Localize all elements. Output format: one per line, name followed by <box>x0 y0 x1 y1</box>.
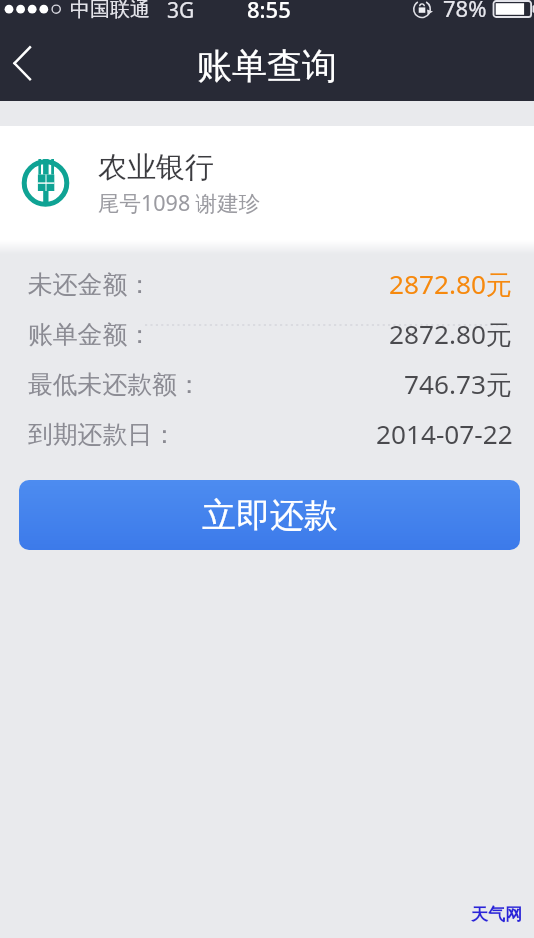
staticText: 未还金额： <box>28 269 152 300</box>
staticText: 到期还款日： <box>28 419 177 450</box>
staticText: 尾号1098 谢建珍 <box>98 188 261 217</box>
staticText: 立即还款 <box>202 494 338 537</box>
button[interactable]: 立即还款 <box>19 480 520 550</box>
staticText: 78% <box>443 0 487 23</box>
staticText: 最低未还款额： <box>28 369 202 400</box>
staticText: 2872.80元 <box>389 266 513 302</box>
staticText: 746.73元 <box>404 366 513 402</box>
staticText: 2014-07-22 <box>376 416 513 452</box>
staticText: 账单金额： <box>28 319 152 350</box>
staticText: 8:55 <box>247 0 291 24</box>
staticText: 农业银行 <box>98 149 214 186</box>
staticText: 账单查询 <box>197 44 337 88</box>
staticText: 2872.80元 <box>389 316 513 352</box>
staticText: 3G <box>167 0 195 25</box>
button[interactable]: 农业银行 <box>0 126 534 240</box>
staticText: 天气网 <box>471 904 522 925</box>
staticText: 中国联通 <box>70 0 150 22</box>
button[interactable]: Back <box>0 38 56 94</box>
